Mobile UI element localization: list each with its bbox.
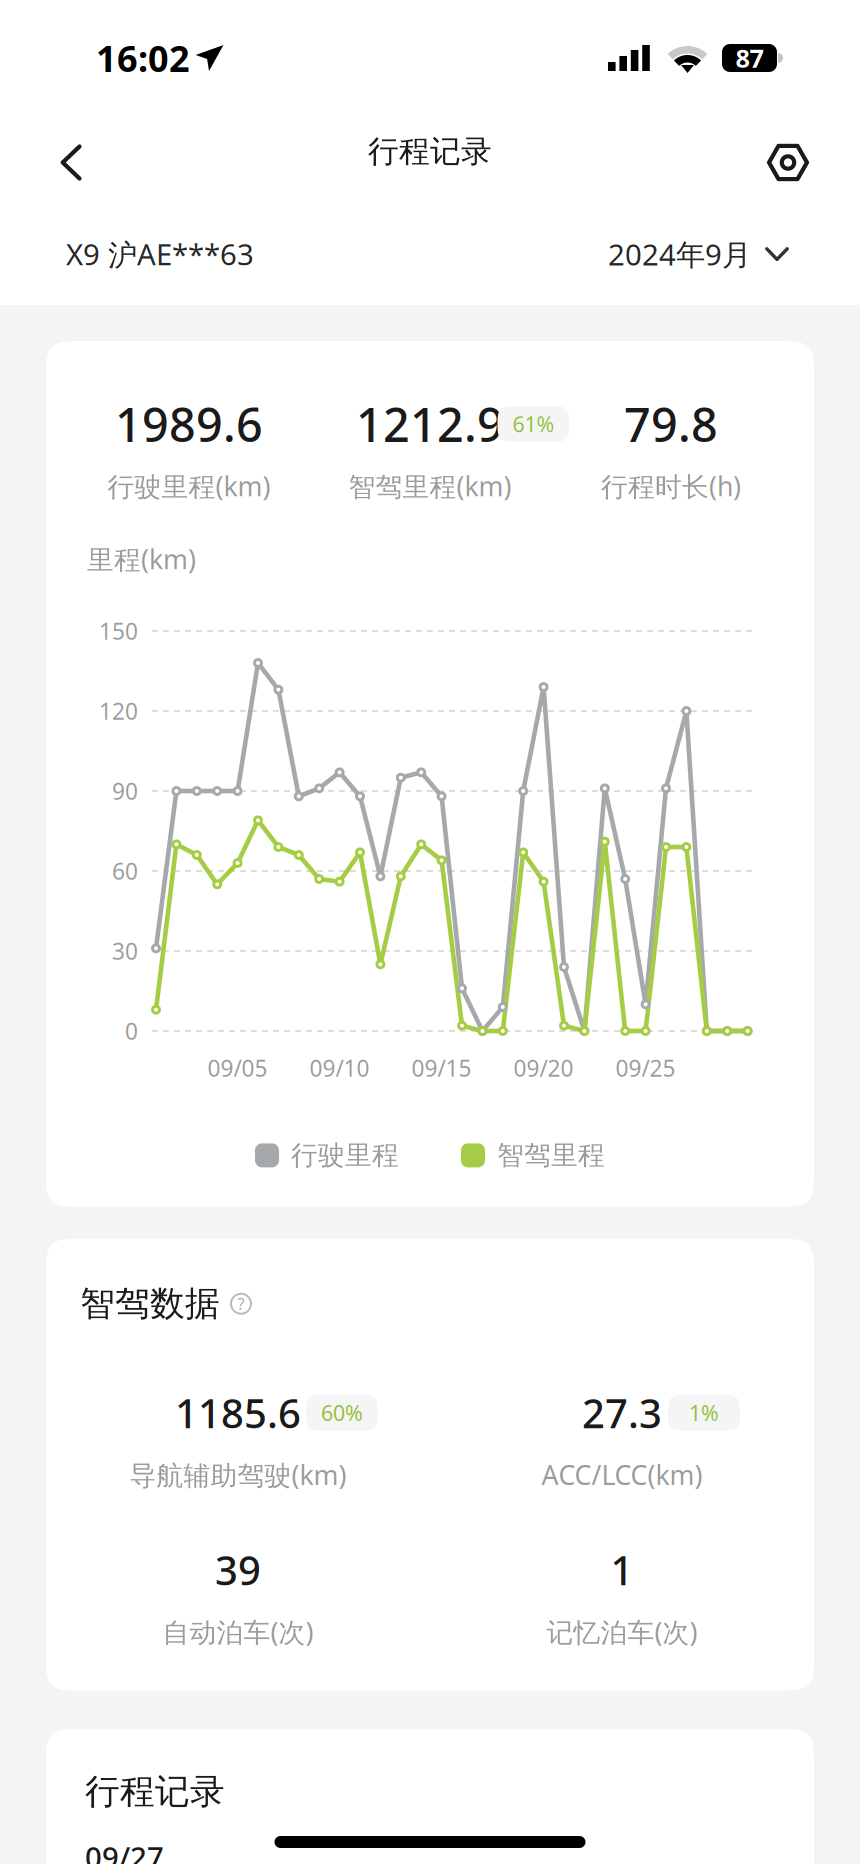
staticText: 行驶里程 — [291, 1139, 399, 1172]
staticText: 行程时长(h) — [601, 468, 741, 504]
staticText: 行程记录 — [368, 133, 492, 170]
staticText: 1212.9 — [356, 393, 504, 455]
staticText: 智驾数据 — [80, 1282, 220, 1325]
staticText: 60 — [112, 856, 138, 886]
staticText: 1989.6 — [115, 393, 263, 455]
staticText: 16:02 — [96, 34, 190, 82]
staticText: 1185.6 — [175, 1386, 301, 1439]
staticText: 150 — [99, 616, 138, 646]
staticText: 60% — [321, 1399, 363, 1427]
staticText: 0 — [125, 1016, 138, 1046]
staticText: 智驾里程 — [497, 1139, 605, 1172]
staticText: 里程(km) — [87, 541, 196, 577]
staticText: 90 — [112, 776, 138, 806]
staticText: 行程记录 — [85, 1770, 225, 1813]
staticText: X9 沪AE***63 — [66, 234, 254, 273]
staticText: 1 — [610, 1543, 633, 1596]
staticText: 09/27 — [85, 1837, 164, 1864]
staticText: 1% — [689, 1399, 719, 1427]
staticText: 61% — [512, 410, 554, 438]
staticText: 2024年9月 — [608, 234, 751, 273]
staticText: 09/05 — [208, 1053, 268, 1083]
staticText: 30 — [112, 936, 138, 966]
staticText: 39 — [215, 1543, 261, 1596]
staticText: 79.8 — [624, 393, 718, 455]
staticText: 记忆泊车(次) — [546, 1614, 697, 1649]
staticText: 09/20 — [514, 1053, 574, 1083]
staticText: 87 — [735, 41, 763, 75]
button[interactable]: Back — [0, 106, 142, 196]
staticText: 120 — [99, 696, 138, 726]
staticText: ACC/LCC(km) — [541, 1457, 702, 1492]
staticText: 行驶里程(km) — [107, 468, 270, 504]
staticText: 智驾里程(km) — [348, 468, 511, 504]
staticText: ? — [237, 1293, 244, 1314]
staticText: 自动泊车(次) — [162, 1614, 313, 1649]
staticText: 09/15 — [412, 1053, 472, 1083]
button[interactable]: Settings — [716, 106, 860, 196]
staticText: 09/25 — [616, 1053, 676, 1083]
button[interactable]: 2024年9月 — [608, 224, 789, 284]
staticText: 27.3 — [582, 1386, 662, 1439]
staticText: 导航辅助驾驶(km) — [129, 1457, 346, 1492]
staticText: 09/10 — [310, 1053, 370, 1083]
